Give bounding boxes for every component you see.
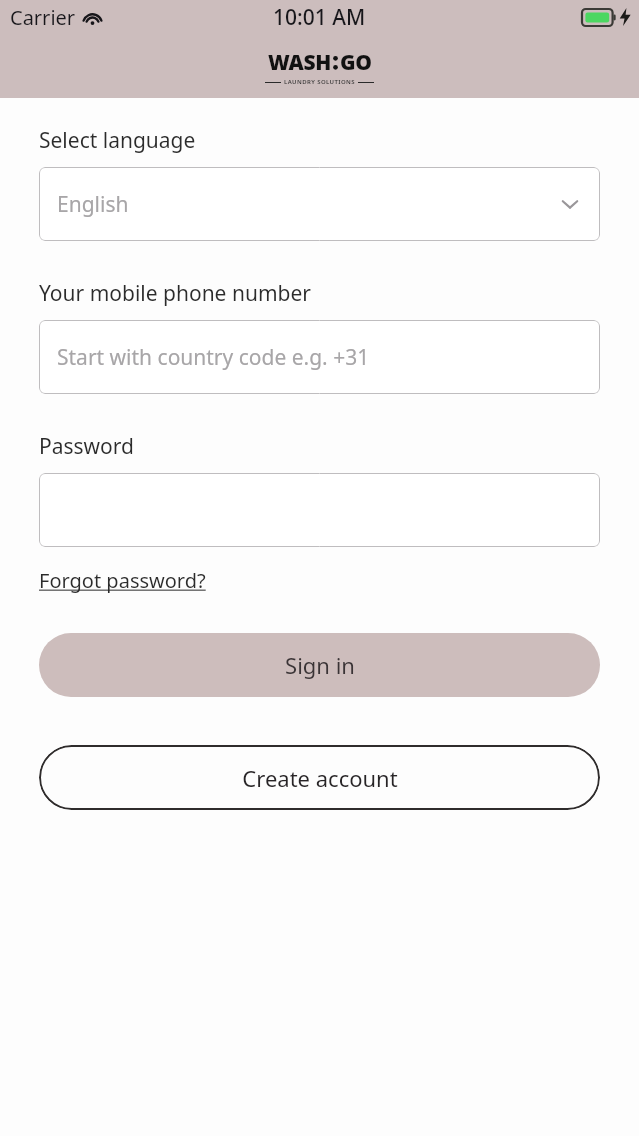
staticText: WASH <box>268 48 331 77</box>
staticText: Password <box>39 432 134 461</box>
button[interactable]: Create account <box>39 745 600 810</box>
button[interactable] <box>39 473 600 547</box>
staticText: Create account <box>242 763 398 793</box>
button[interactable]: Forgot password? <box>39 567 206 594</box>
button[interactable]: Start with country code e.g. +31 <box>39 320 600 394</box>
staticText: 10:01 AM <box>273 3 366 32</box>
staticText: English <box>57 190 129 219</box>
staticText: GO <box>340 48 372 77</box>
button[interactable]: Sign in <box>39 633 600 697</box>
other: Charging <box>619 8 631 26</box>
button[interactable]: English <box>39 167 600 241</box>
staticText: Select language <box>39 126 196 155</box>
staticText: Forgot password? <box>39 567 206 594</box>
staticText: Your mobile phone number <box>39 279 311 308</box>
staticText: Sign in <box>285 650 355 680</box>
other: Wi-Fi <box>83 10 102 25</box>
staticText: LAUNDRY SOLUTIONS <box>284 78 355 86</box>
other: Battery <box>582 9 616 26</box>
staticText: Carrier <box>10 4 76 31</box>
staticText: Start with country code e.g. +31 <box>57 343 370 372</box>
